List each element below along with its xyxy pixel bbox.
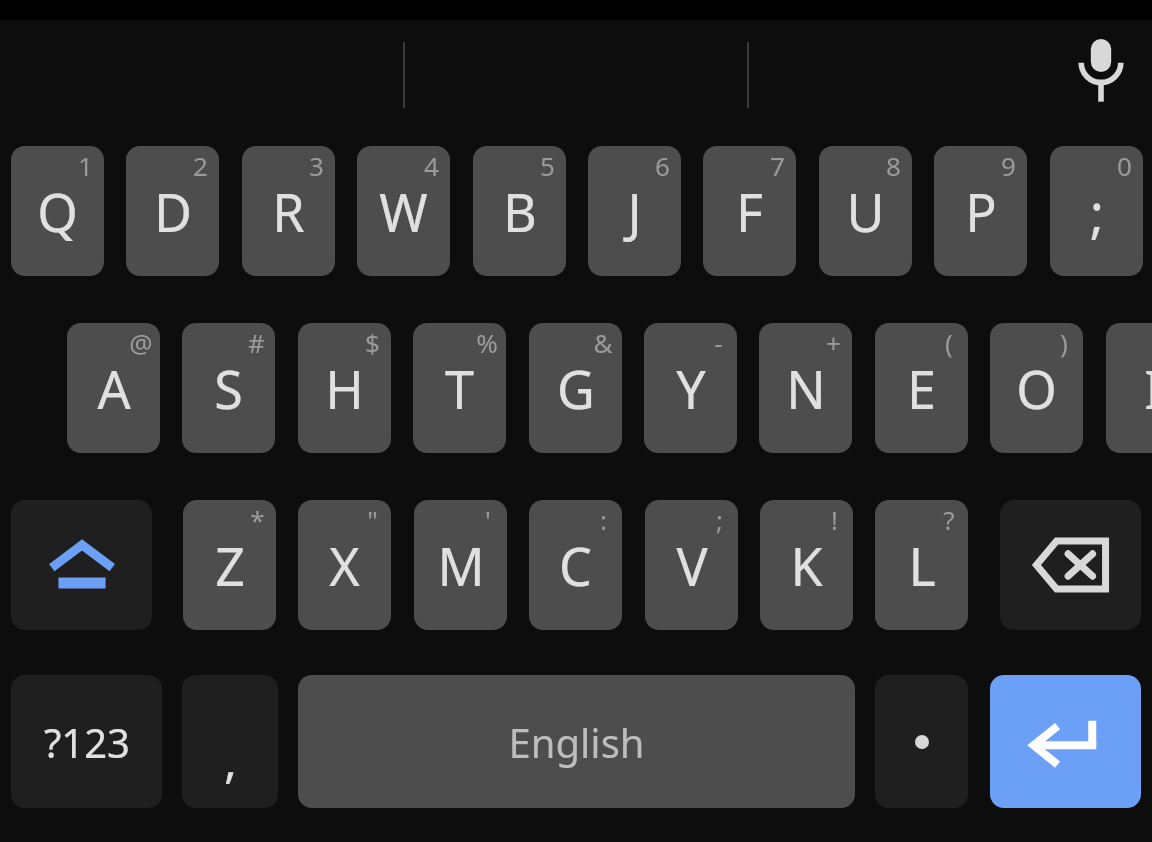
staticText: % [476, 325, 498, 359]
staticText: - [714, 325, 723, 359]
staticText: E [907, 353, 936, 424]
staticText: 6 [655, 148, 670, 182]
staticText: L [908, 530, 936, 601]
staticText: @ [129, 325, 153, 359]
staticText: 2 [193, 148, 208, 182]
staticText: * [250, 502, 265, 536]
button[interactable]: Period [875, 675, 968, 808]
staticText: R [272, 176, 305, 247]
button[interactable]: G [529, 323, 622, 453]
staticText: 5 [540, 148, 555, 182]
staticText: H [325, 353, 364, 424]
staticText: , [224, 727, 237, 792]
button[interactable]: Shift caps lock [11, 500, 152, 630]
staticText: & [593, 325, 613, 359]
button[interactable]: X [298, 500, 391, 630]
staticText: M [437, 530, 485, 601]
staticText: 9 [1001, 148, 1016, 182]
staticText: A [97, 353, 131, 424]
button[interactable]: N [759, 323, 852, 453]
button[interactable]: H [298, 323, 391, 453]
staticText: O [1016, 353, 1057, 424]
button[interactable]: V [645, 500, 738, 630]
staticText: S [214, 353, 243, 424]
button[interactable]: Q [11, 146, 104, 276]
staticText: X [329, 530, 360, 601]
button[interactable]: Backspace [1000, 500, 1141, 630]
staticText: C [559, 530, 592, 601]
staticText: ?123 [44, 715, 130, 769]
staticText: 3 [309, 148, 324, 182]
button[interactable]: F [703, 146, 796, 276]
button[interactable]: A [67, 323, 160, 453]
staticText: J [627, 176, 642, 247]
staticText: " [367, 502, 378, 536]
staticText: 1 [78, 148, 93, 182]
staticText: # [248, 325, 265, 359]
staticText: Z [215, 530, 245, 601]
staticText: ' [485, 502, 491, 536]
button[interactable]: W [357, 146, 450, 276]
button[interactable]: Voice input [1058, 27, 1144, 113]
button[interactable]: O [990, 323, 1083, 453]
button[interactable]: T [413, 323, 506, 453]
staticText: W [379, 176, 428, 247]
button[interactable]: R [242, 146, 335, 276]
staticText: English [508, 715, 645, 769]
button[interactable]: Enter [990, 675, 1141, 808]
button[interactable]: J [588, 146, 681, 276]
button[interactable]: Z [183, 500, 276, 630]
staticText: ; [1090, 176, 1104, 247]
button[interactable]: U [819, 146, 912, 276]
staticText: P [965, 176, 997, 247]
button[interactable]: ?123 [11, 675, 162, 808]
staticText: B [503, 176, 537, 247]
button[interactable]: P [934, 146, 1027, 276]
button[interactable]: M [414, 500, 507, 630]
staticText: D [154, 176, 192, 247]
staticText: G [557, 353, 595, 424]
button[interactable]: S [182, 323, 275, 453]
staticText: N [786, 353, 826, 424]
button[interactable]: E [875, 323, 968, 453]
staticText: T [445, 353, 474, 424]
button[interactable]: , [182, 675, 278, 808]
button[interactable]: Y [644, 323, 737, 453]
staticText: K [790, 530, 823, 601]
staticText: Y [676, 353, 706, 424]
staticText: V [676, 530, 708, 601]
staticText: 4 [424, 148, 439, 182]
staticText: 7 [770, 148, 785, 182]
staticText: F [736, 176, 763, 247]
staticText: Q [37, 176, 78, 247]
button[interactable]: English [298, 675, 855, 808]
staticText: U [846, 176, 885, 247]
staticText: 0 [1117, 148, 1132, 182]
button[interactable]: I [1106, 323, 1152, 453]
staticText: ; [716, 502, 723, 536]
button[interactable]: ; [1050, 146, 1143, 276]
staticText: : [600, 502, 607, 536]
button[interactable]: B [473, 146, 566, 276]
button[interactable]: L [875, 500, 968, 630]
staticText: ( [945, 325, 953, 359]
staticText: ) [1060, 325, 1068, 359]
button[interactable]: D [126, 146, 219, 276]
staticText: 8 [886, 148, 901, 182]
button[interactable]: C [529, 500, 622, 630]
button[interactable]: K [760, 500, 853, 630]
staticText: I [1144, 353, 1152, 424]
staticText: $ [365, 325, 380, 359]
staticText: ! [831, 502, 838, 536]
staticText: + [826, 325, 841, 359]
staticText: ? [943, 502, 955, 536]
